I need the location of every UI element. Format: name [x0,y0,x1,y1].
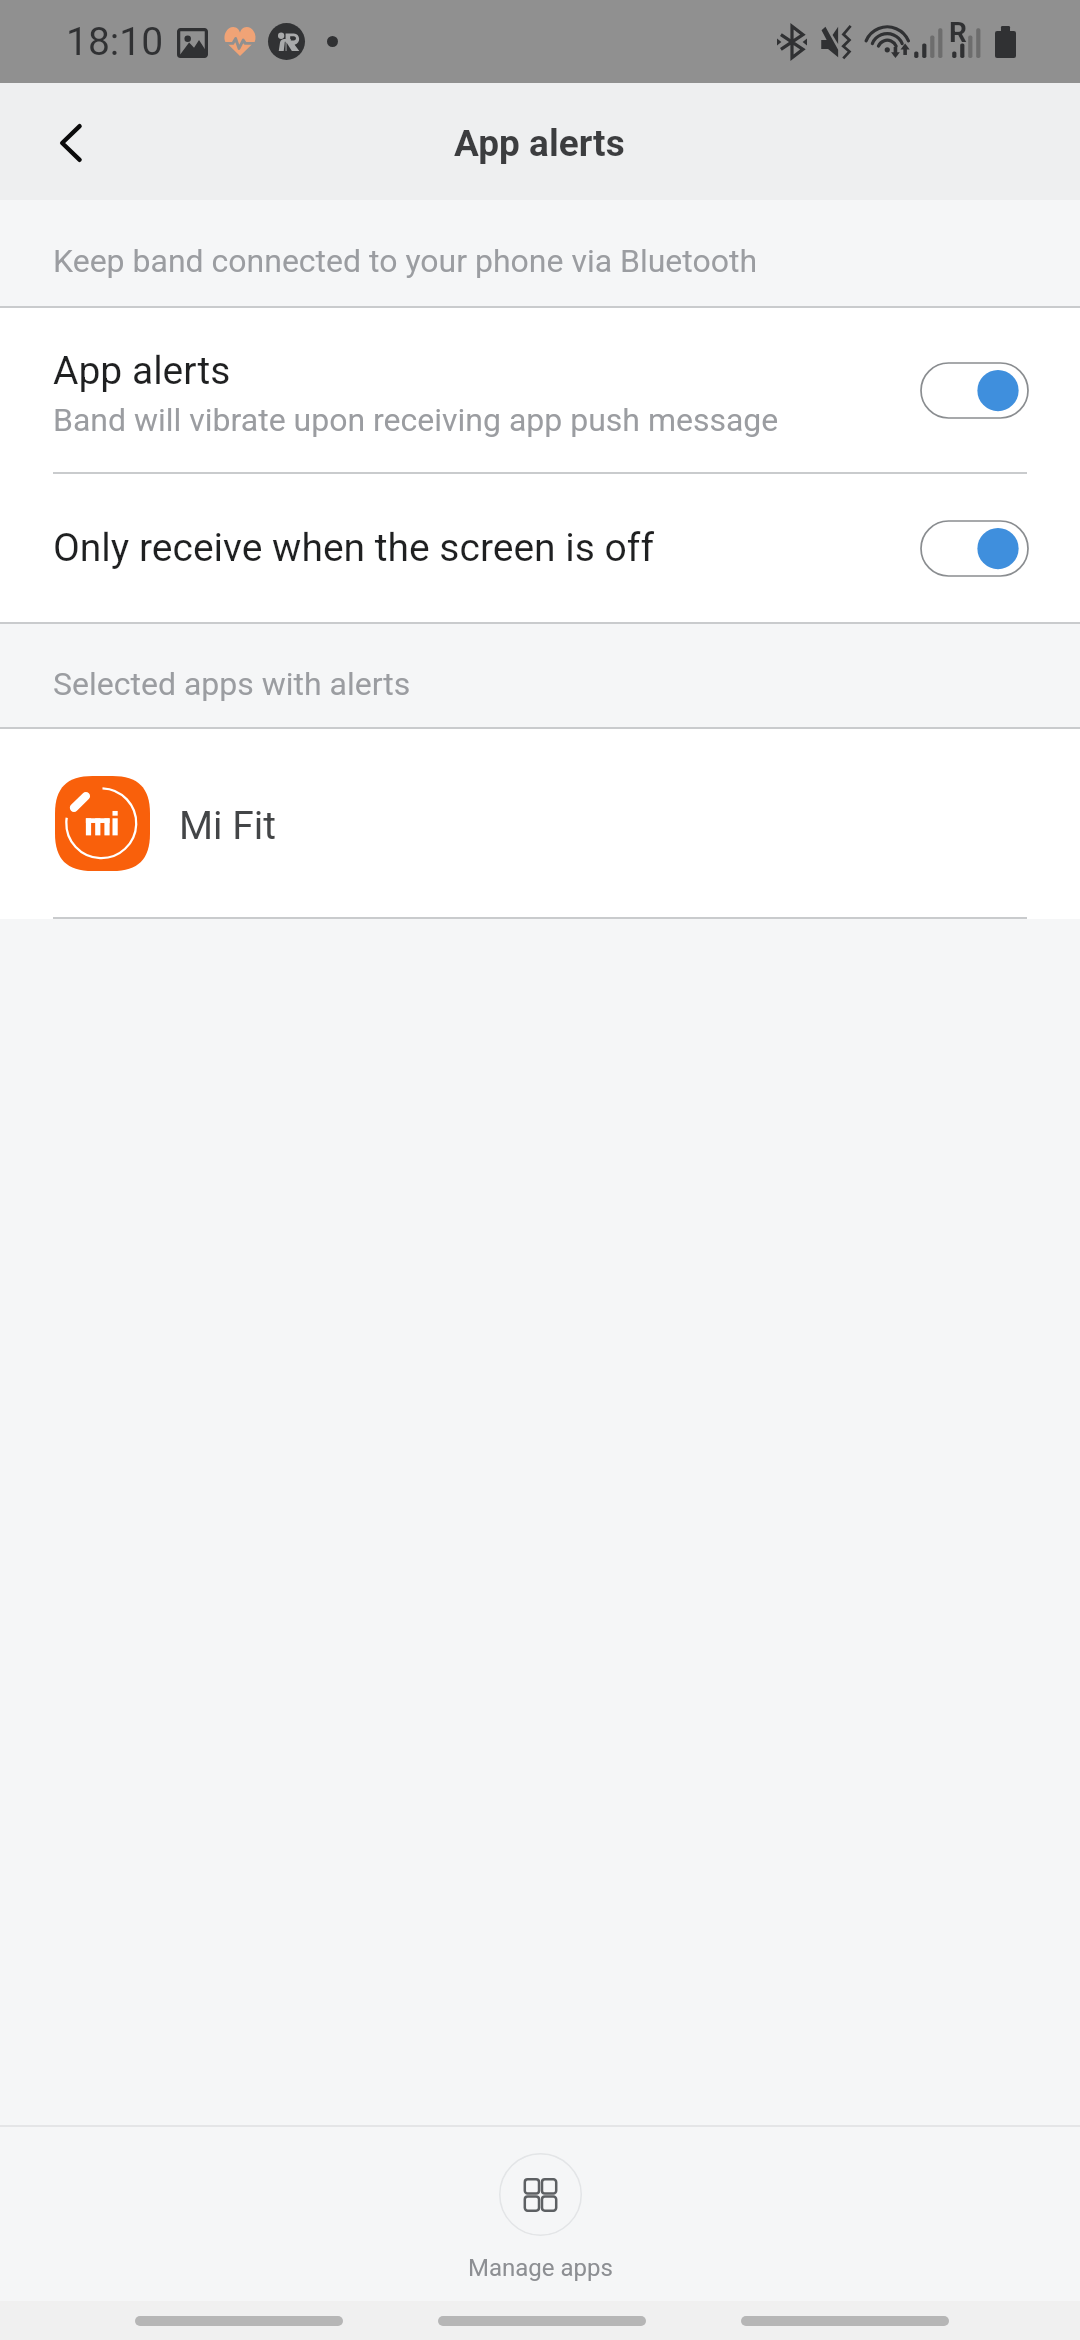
staticText: 18:10 [66,19,164,65]
staticText: Only receive when the screen is off [53,525,921,571]
button[interactable]: App alerts [0,308,1080,472]
button[interactable]: Home [438,2316,646,2326]
staticText: Keep band connected to your phone via Bl… [53,242,758,280]
button[interactable]: Back [741,2316,949,2326]
button[interactable]: Toggle on [921,363,1028,418]
staticText: Selected apps with alerts [53,665,411,703]
button[interactable]: Mi Fit [0,729,1080,917]
button[interactable]: Manage apps [420,2127,660,2301]
staticText: App alerts [53,348,231,394]
staticText: Mi Fit [179,803,277,849]
staticText: R [949,16,967,48]
button[interactable]: Only receive when the screen is off [0,474,1080,622]
staticText: App alerts [454,122,625,165]
staticText: Band will vibrate upon receiving app pus… [53,401,779,439]
staticText: Manage apps [468,2254,613,2282]
button[interactable]: Back [0,83,120,200]
button[interactable]: Toggle on [921,521,1028,576]
button[interactable]: Recents [135,2316,343,2326]
